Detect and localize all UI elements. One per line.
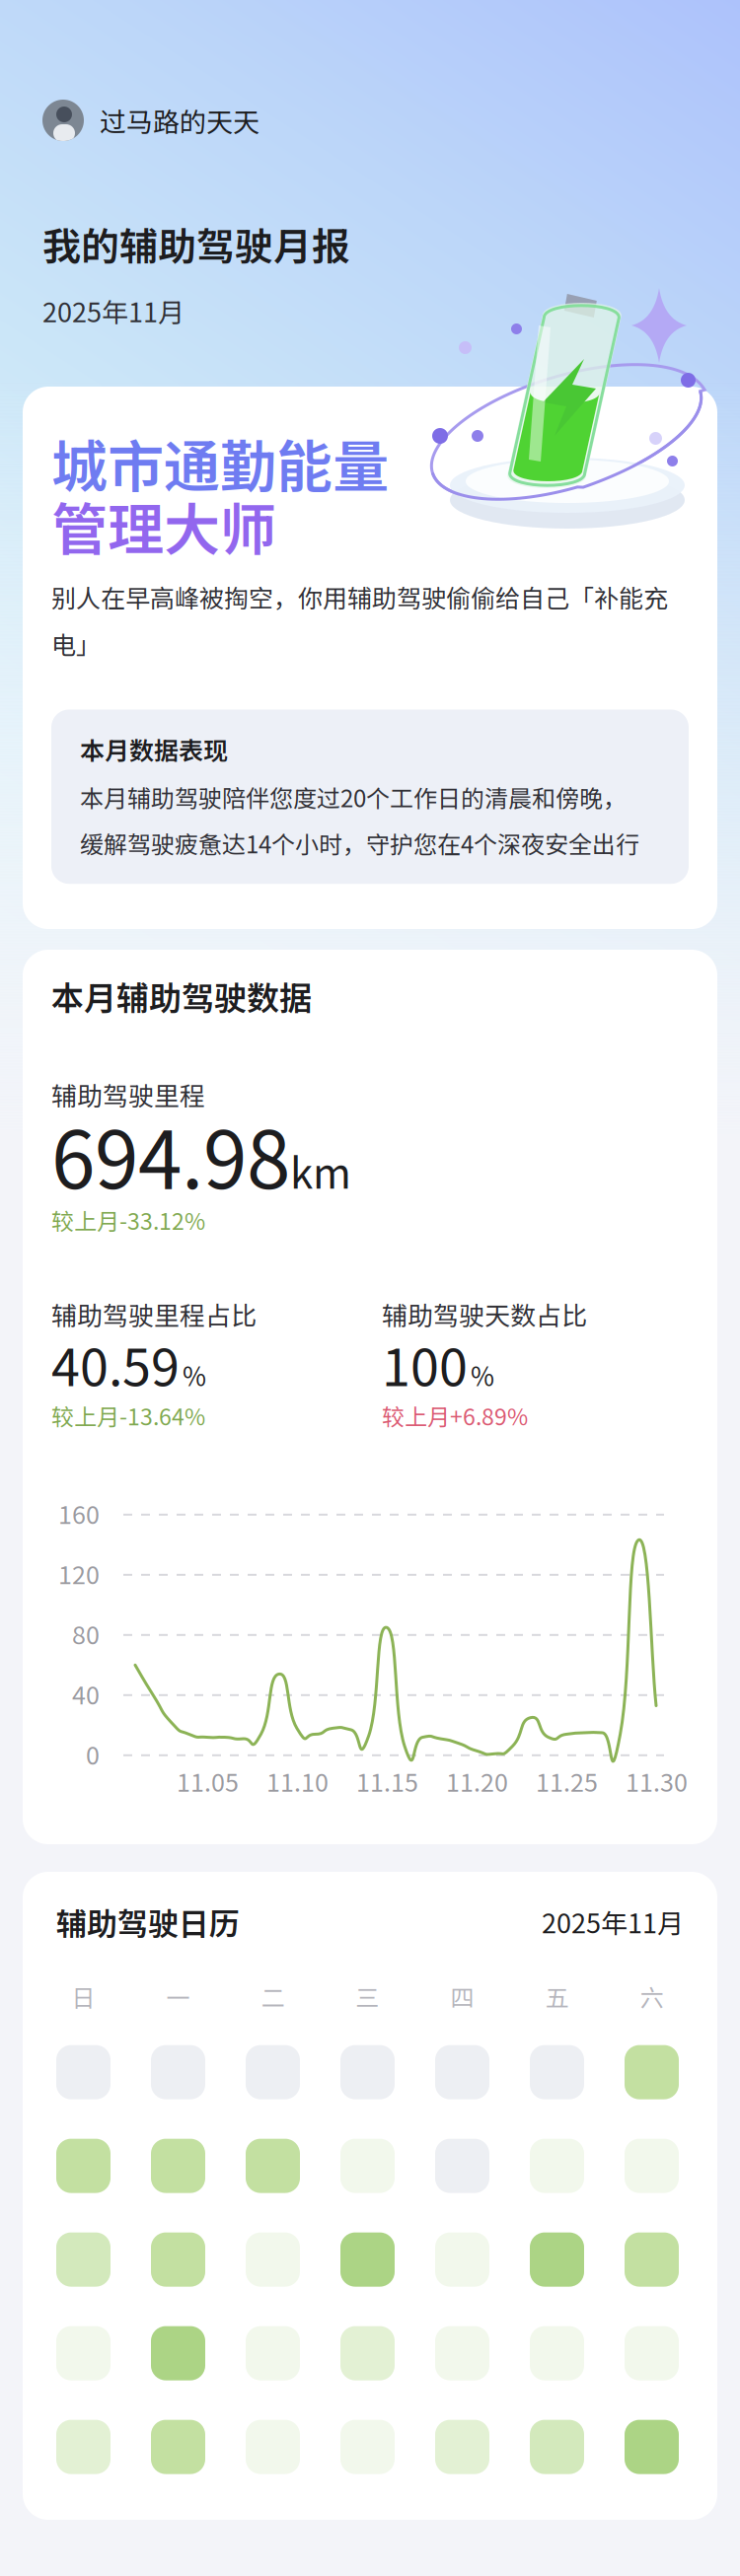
staticText: 较上月+6.89% (382, 1399, 528, 1432)
staticText: 五 (545, 1979, 569, 2014)
staticText: 694.98 (51, 1097, 290, 1211)
staticText: 11.25 (536, 1763, 598, 1799)
staticText: % (471, 1356, 494, 1394)
staticText: 二 (261, 1979, 285, 2014)
staticText: 一 (166, 1979, 190, 2014)
staticText: 城市通勤能量 (51, 422, 389, 503)
staticText: 160 (58, 1495, 100, 1531)
staticText: 11.30 (626, 1763, 688, 1799)
staticText: 2025年11月 (542, 1902, 684, 1941)
staticText: 11.15 (356, 1763, 418, 1799)
staticText: 四 (450, 1979, 474, 2014)
staticText: 120 (58, 1555, 100, 1591)
staticText: % (183, 1356, 206, 1394)
staticText: 辅助驾驶日历 (56, 1899, 240, 1944)
staticText: 日 (72, 1979, 95, 2014)
staticText: 辅助驾驶里程 (51, 1076, 205, 1113)
staticText: 40 (72, 1676, 100, 1711)
staticText: 2025年11月 (42, 291, 185, 330)
staticText: 较上月-13.64% (51, 1399, 205, 1432)
staticText: 过马路的天天 (100, 101, 259, 140)
staticText: 11.10 (266, 1763, 329, 1799)
button[interactable]: 过马路的天天 (42, 100, 259, 141)
staticText: 11.20 (446, 1763, 508, 1799)
staticText: 辅助驾驶里程占比 (51, 1295, 257, 1333)
staticText: 六 (640, 1979, 664, 2014)
staticText: 辅助驾驶天数占比 (382, 1295, 587, 1333)
staticText: 11.05 (177, 1763, 239, 1799)
staticText: 管理大师 (51, 485, 276, 566)
staticText: 80 (72, 1616, 100, 1651)
staticText: 我的辅助驾驶月报 (42, 216, 350, 272)
staticText: 较上月-33.12% (51, 1203, 205, 1236)
staticText: 本月辅助驾驶陪伴您度过20个工作日的清晨和傍晚，缓解驾驶疲惫达14个小时，守护您… (80, 780, 639, 860)
staticText: 本月辅助驾驶数据 (51, 972, 312, 1020)
staticText: 100 (382, 1327, 468, 1401)
staticText: 别人在早高峰被掏空，你用辅助驾驶偷偷给自己「补能充电」 (51, 579, 668, 661)
staticText: 三 (356, 1979, 379, 2014)
staticText: 40.59 (51, 1327, 180, 1401)
staticText: 0 (86, 1736, 100, 1772)
staticText: 本月数据表现 (80, 731, 228, 767)
staticText: km (290, 1141, 351, 1201)
